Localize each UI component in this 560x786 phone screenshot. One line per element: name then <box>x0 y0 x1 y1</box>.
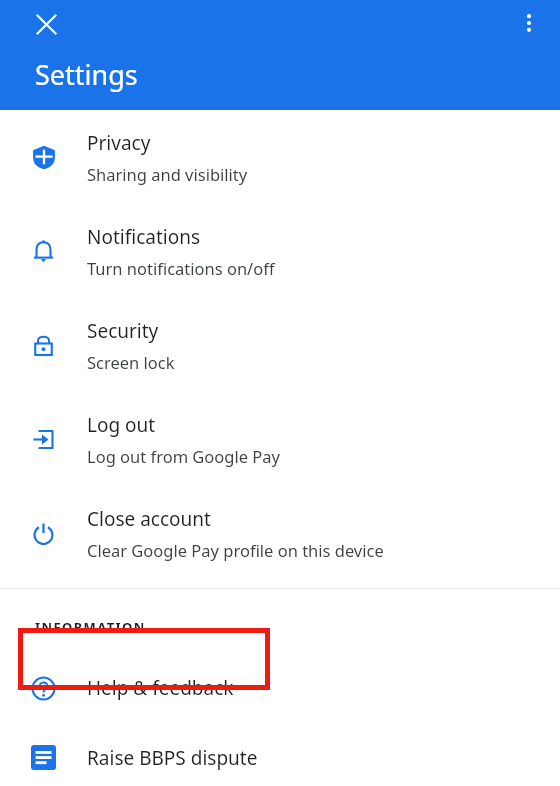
staticText: INFORMATION <box>35 618 146 636</box>
button[interactable]: Help & feedback <box>0 647 560 729</box>
staticText: Notifications <box>87 224 201 250</box>
button[interactable]: Raise BBPS dispute <box>0 729 560 786</box>
staticText: Turn notifications on/off <box>87 257 275 279</box>
staticText: Clear Google Pay profile on this device <box>87 539 384 561</box>
staticText: Screen lock <box>87 351 175 373</box>
button[interactable]: Close account <box>0 486 560 580</box>
staticText: Raise BBPS dispute <box>87 745 258 771</box>
button[interactable]: Log out <box>0 392 560 486</box>
staticText: Sharing and visibility <box>87 163 248 185</box>
staticText: Log out from Google Pay <box>87 445 280 467</box>
staticText: Security <box>87 318 159 344</box>
button[interactable]: More options <box>508 2 550 44</box>
staticText: Help & feedback <box>87 675 234 701</box>
button[interactable]: Security <box>0 298 560 392</box>
button[interactable]: Privacy <box>0 110 560 204</box>
staticText: Log out <box>87 412 156 438</box>
button[interactable]: Close <box>25 3 67 45</box>
staticText: Privacy <box>87 130 151 156</box>
staticText: Settings <box>35 56 138 93</box>
staticText: Close account <box>87 506 211 532</box>
button[interactable]: Notifications <box>0 204 560 298</box>
